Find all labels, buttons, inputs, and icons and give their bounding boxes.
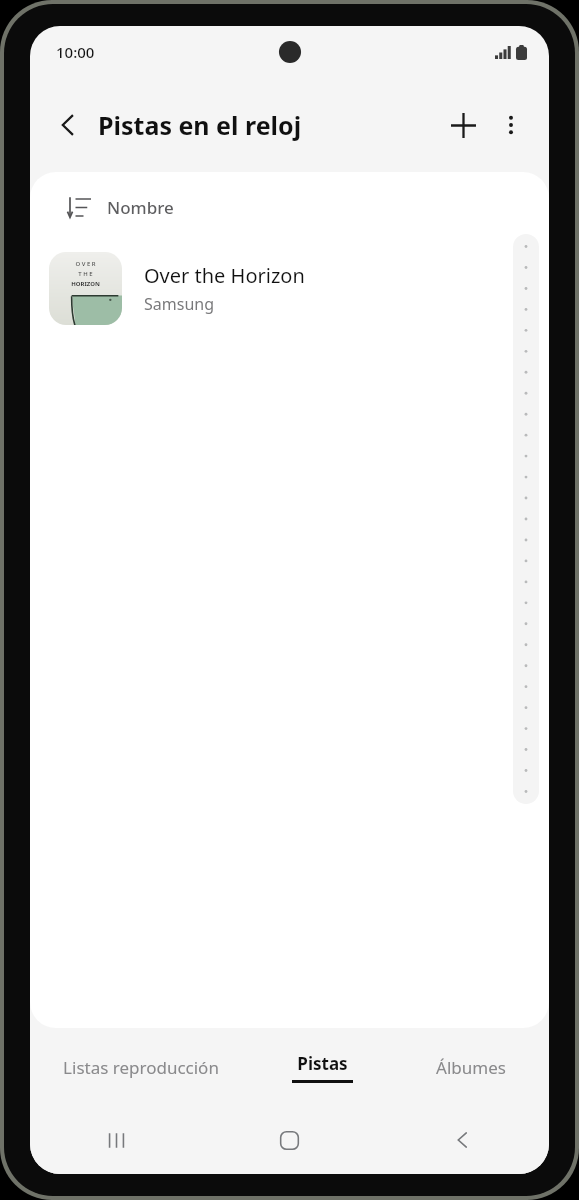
button[interactable]: Nombre (30, 172, 549, 242)
staticText: Samsung (144, 293, 215, 315)
staticText: O V E R (75, 260, 96, 268)
staticText: T H E (78, 270, 93, 278)
button[interactable]: Inicio (203, 1106, 376, 1174)
staticText: 10:00 (56, 42, 95, 62)
button[interactable]: Atrás (44, 101, 92, 149)
staticText: Álbumes (436, 1056, 506, 1079)
staticText: HORIZON (71, 280, 100, 288)
button[interactable]: Recientes (30, 1106, 203, 1174)
button[interactable]: Más opciones (487, 101, 535, 149)
button[interactable]: Álbumes (393, 1028, 549, 1106)
button[interactable]: Añadir (439, 101, 487, 149)
staticText: Over the Horizon (144, 262, 305, 289)
staticText: Nombre (107, 196, 174, 219)
button[interactable]: Índice alfabético (513, 234, 539, 804)
button[interactable]: O V E R (30, 242, 549, 334)
staticText: Pistas en el reloj (98, 108, 439, 142)
staticText: Pistas (297, 1052, 348, 1075)
button[interactable]: Atrás (376, 1106, 549, 1174)
staticText: Listas reproducción (63, 1056, 219, 1079)
button[interactable]: Listas reproducción (30, 1028, 251, 1106)
button[interactable]: Pistas (251, 1028, 393, 1106)
